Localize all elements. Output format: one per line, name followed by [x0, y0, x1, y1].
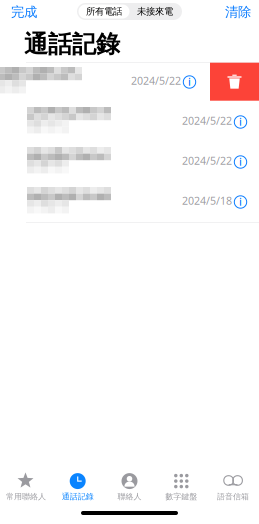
button[interactable]: 未接來電 — [129, 4, 180, 18]
staticText: 未接來電 — [137, 6, 173, 17]
staticText: 2024/5/22 — [182, 153, 232, 168]
staticText: i — [188, 74, 191, 89]
staticText: 2024/5/22 — [182, 113, 232, 128]
staticText: 常用聯絡人 — [6, 492, 46, 501]
button[interactable]: 通話記錄 — [52, 471, 104, 503]
staticText: i — [239, 194, 242, 209]
button[interactable]: 2024/5/22 — [0, 142, 259, 181]
button[interactable]: 清除 — [215, 1, 251, 23]
button[interactable]: 完成 — [11, 1, 51, 23]
button[interactable]: 2024/5/18 — [0, 182, 259, 221]
button[interactable]: Delete — [210, 63, 259, 101]
staticText: 通話記錄 — [62, 492, 94, 501]
staticText: 數字鍵盤 — [165, 492, 197, 501]
staticText: 所有電話 — [86, 6, 122, 17]
button[interactable]: 常用聯絡人 — [0, 471, 52, 503]
staticText: 2024/5/18 — [182, 193, 232, 208]
staticText: 語音信箱 — [217, 492, 249, 501]
staticText: 通話記錄 — [24, 29, 120, 59]
staticText: 清除 — [225, 4, 251, 20]
staticText: i — [239, 114, 242, 129]
staticText: i — [239, 154, 242, 169]
staticText: 聯絡人 — [117, 492, 141, 501]
button[interactable]: 語音信箱 — [207, 471, 259, 503]
button[interactable]: 數字鍵盤 — [155, 471, 207, 503]
staticText: 完成 — [11, 4, 37, 20]
staticText: 2024/5/22 — [131, 73, 181, 88]
button[interactable]: 2024/5/22 — [0, 102, 259, 141]
button[interactable]: 所有電話 — [78, 4, 129, 18]
button[interactable]: 聯絡人 — [104, 471, 155, 503]
